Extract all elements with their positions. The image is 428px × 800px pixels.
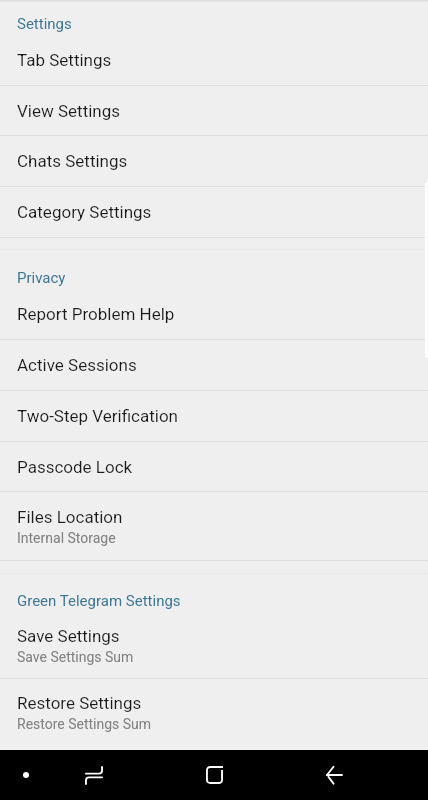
staticText: Two-Step Verification [17, 406, 178, 426]
button[interactable]: Category Settings [0, 187, 428, 237]
staticText: Files Location [17, 507, 123, 527]
button[interactable]: Report Problem Help [0, 289, 428, 339]
button[interactable]: Two-Step Verification [0, 391, 428, 441]
staticText: Restore Settings [17, 693, 142, 713]
staticText: Category Settings [17, 202, 152, 222]
staticText: Settings [17, 15, 72, 33]
staticText: Active Sessions [17, 355, 137, 375]
button[interactable]: Passcode Lock [0, 442, 428, 491]
button[interactable]: Active Sessions [0, 340, 428, 390]
button[interactable]: Assistant [6, 755, 46, 795]
button[interactable]: Save Settings [0, 612, 428, 678]
staticText: Privacy [17, 269, 66, 287]
staticText: Green Telegram Settings [17, 592, 181, 610]
button[interactable]: Tab Settings [0, 35, 428, 85]
button[interactable]: Files Location [0, 492, 428, 560]
staticText: Restore Settings Sum [17, 716, 152, 732]
staticText: Chats Settings [17, 151, 128, 171]
staticText: Save Settings [17, 626, 120, 646]
button[interactable]: View Settings [0, 86, 428, 135]
staticText: Save Settings Sum [17, 649, 134, 665]
button[interactable]: Restore Settings [0, 679, 428, 745]
staticText: Passcode Lock [17, 457, 133, 477]
staticText: Internal Storage [17, 530, 116, 546]
button[interactable]: Recent apps [191, 752, 237, 798]
button[interactable]: Chats Settings [0, 136, 428, 186]
button[interactable]: Switch apps [71, 752, 117, 798]
staticText: Report Problem Help [17, 304, 175, 324]
button[interactable]: Back [311, 752, 357, 798]
staticText: Tab Settings [17, 50, 112, 70]
staticText: View Settings [17, 101, 121, 121]
